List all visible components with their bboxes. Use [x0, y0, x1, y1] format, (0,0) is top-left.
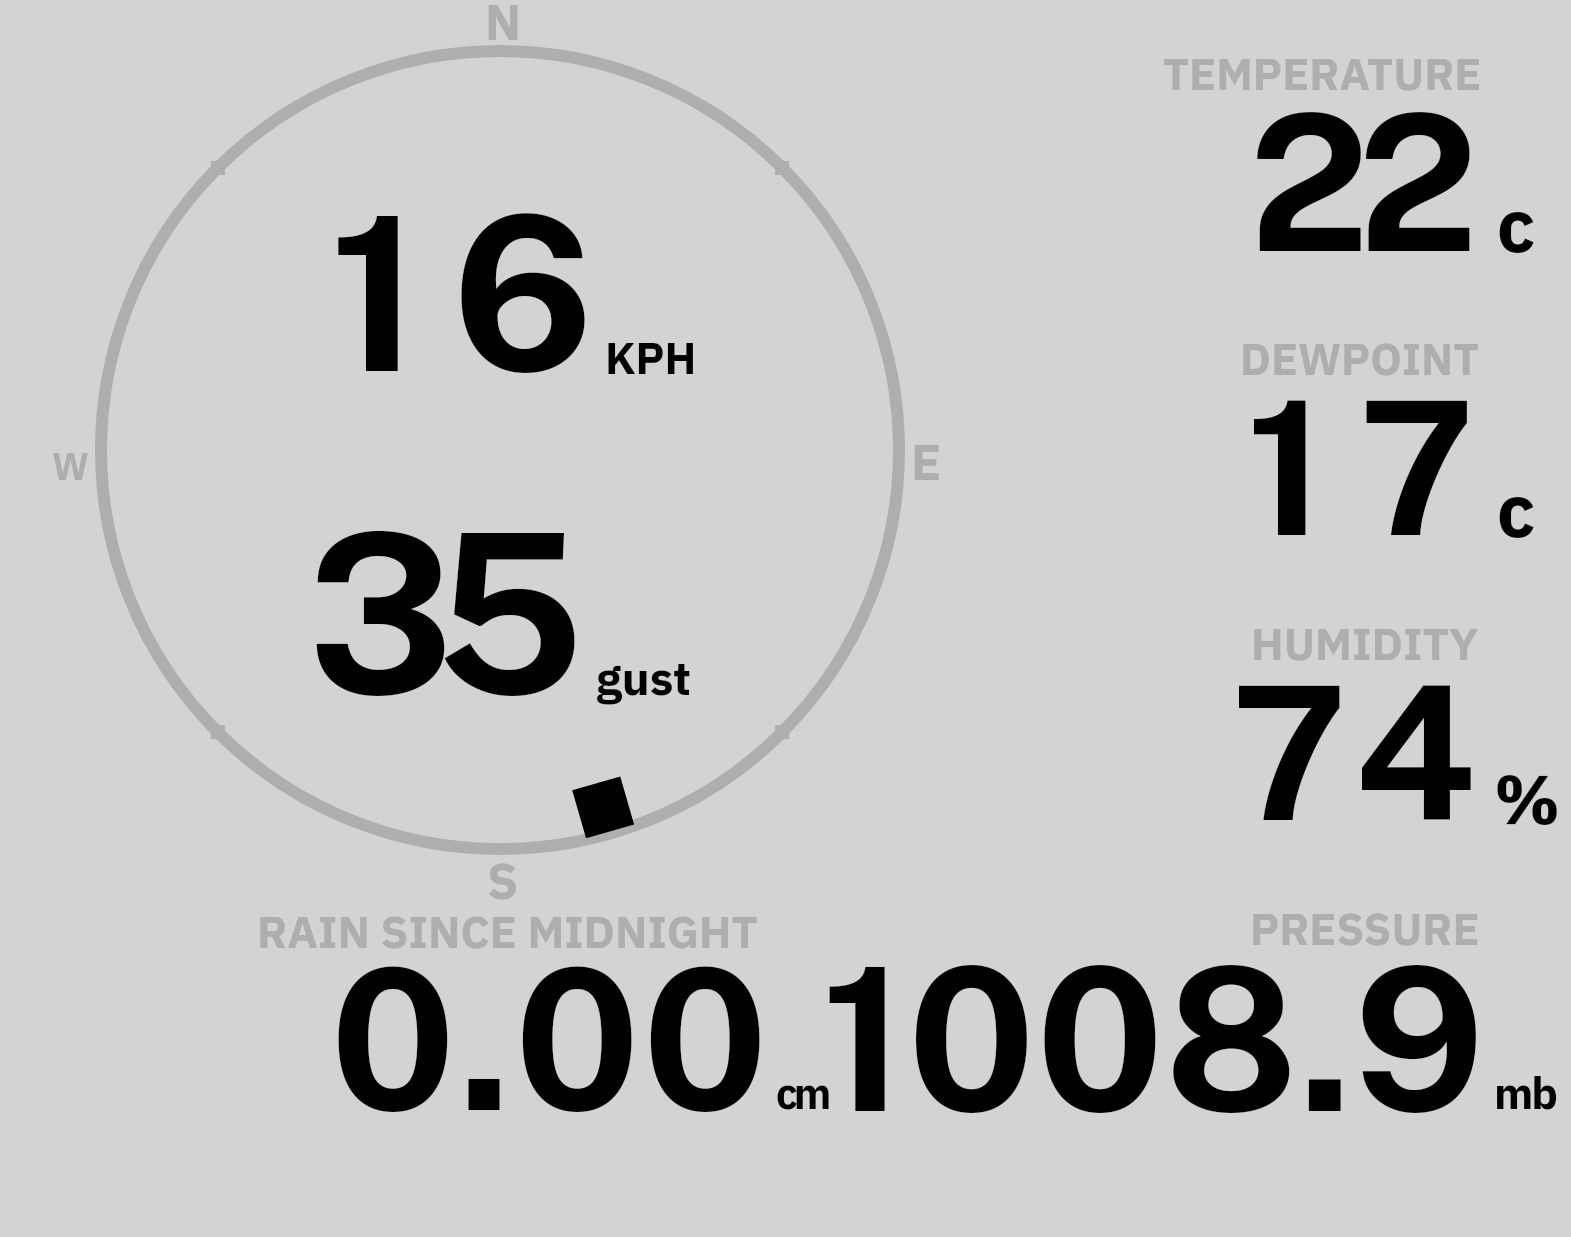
staticText: W — [52, 441, 89, 490]
staticText: S — [487, 848, 519, 913]
staticText: c — [1497, 461, 1536, 557]
staticText: DEWPOINT — [1240, 329, 1480, 387]
staticText: PRESSURE — [1250, 899, 1480, 957]
staticText: 74 — [1231, 643, 1486, 862]
staticText: 35 — [307, 484, 566, 744]
staticText: mb — [1494, 1064, 1557, 1121]
button[interactable]: Temperature 22 c — [1130, 40, 1571, 270]
staticText: 1008.9 — [821, 922, 1486, 1156]
button[interactable]: Wind 16 KPH, gusting 35, south south-eas… — [70, 0, 950, 900]
staticText: 17 — [1246, 358, 1509, 577]
staticText: 16 — [329, 167, 626, 420]
staticText: E — [911, 429, 942, 494]
staticText: c — [1497, 176, 1536, 272]
staticText: cm — [776, 1066, 828, 1121]
staticText: N — [485, 0, 522, 54]
staticText: RAIN SINCE MIDNIGHT — [257, 902, 758, 960]
button[interactable]: Humidity 74 percent — [1130, 610, 1571, 835]
staticText: TEMPERATURE — [1163, 44, 1482, 102]
staticText: gust — [596, 647, 692, 708]
staticText: 0.00 — [330, 925, 771, 1154]
button[interactable]: Pressure 1008.9 mb — [850, 900, 1571, 1130]
staticText: KPH — [605, 329, 697, 386]
staticText: % — [1494, 754, 1561, 842]
staticText: HUMIDITY — [1251, 614, 1479, 673]
button[interactable]: Rain since midnight 0.00 cm — [230, 900, 850, 1130]
staticText: 22 — [1249, 70, 1467, 293]
button[interactable]: Dewpoint 17 c — [1130, 325, 1571, 550]
